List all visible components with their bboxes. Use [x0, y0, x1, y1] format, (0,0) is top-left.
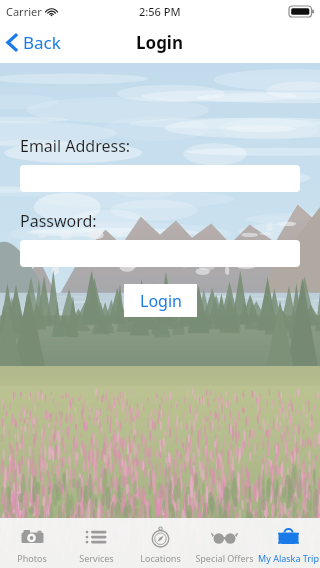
staticText: Services [79, 552, 114, 564]
button[interactable]: Services [64, 518, 128, 568]
staticText: Password: [20, 210, 97, 232]
staticText: Locations [140, 552, 181, 564]
button[interactable]: Login [124, 284, 197, 317]
button[interactable]: My Alaska Trip [256, 518, 320, 568]
staticText: Email Address: [20, 135, 131, 157]
button[interactable]: Special Offers [192, 518, 256, 568]
staticText: Back [23, 31, 61, 54]
button[interactable]: Locations [128, 518, 192, 568]
button[interactable]: Back [0, 22, 71, 63]
staticText: 2:56 PM [139, 4, 181, 19]
staticText: Photos [17, 552, 47, 564]
button[interactable]: Photos [0, 518, 64, 568]
staticText: Login [136, 31, 184, 54]
staticText: My Alaska Trip [258, 552, 319, 564]
staticText: Special Offers [195, 552, 254, 564]
staticText: Login [140, 290, 182, 312]
staticText: Carrier [6, 4, 42, 19]
